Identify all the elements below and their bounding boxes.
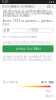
- staticText: Notes: [45, 94, 53, 98]
- button[interactable]: Reload: [47, 5, 50, 8]
- staticText: Lookup by booking reference or productio…: [2, 41, 53, 44]
- button[interactable]: Lookup Tour Status: [2, 45, 53, 52]
- staticText: do not constitute a booking confirmation…: [2, 58, 53, 61]
- staticText: tours.example.com/status: [2, 5, 34, 8]
- staticText: MY PRODUCTION NUMBER: [2, 35, 37, 38]
- button[interactable]: here: [2, 23, 53, 26]
- button[interactable]: More options: [52, 4, 54, 8]
- staticText: 9:41: [2, 0, 9, 4]
- staticText: Lookup results are provided for referenc…: [2, 55, 53, 58]
- staticText: Tour archive: [2, 80, 18, 84]
- staticText: Use this tool to confirm whether a parti…: [2, 9, 53, 13]
- staticText: Tour: [45, 89, 51, 93]
- staticText: Lookup Tour Status: [15, 47, 40, 50]
- staticText: here: [2, 23, 9, 26]
- staticText: booking reference is currently active in…: [2, 12, 53, 15]
- staticText: B.M.: [4, 29, 10, 32]
- staticText: More Ways: [40, 80, 53, 84]
- staticText: production number.: [2, 14, 31, 17]
- staticText: 1993: [30, 29, 38, 32]
- staticText: Series: 1993 to present — production onl…: [2, 19, 53, 23]
